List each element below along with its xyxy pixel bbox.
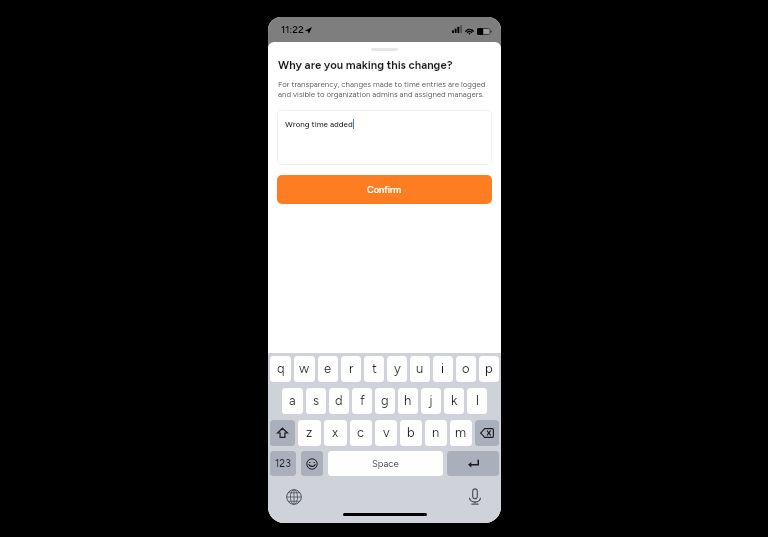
button[interactable]: u [410, 356, 430, 382]
staticText: k [451, 393, 458, 409]
staticText: w [299, 361, 310, 377]
staticText: c [357, 425, 365, 441]
button[interactable]: o [456, 356, 476, 382]
staticText: o [462, 361, 470, 377]
button[interactable]: r [341, 356, 361, 382]
button[interactable]: y [387, 356, 407, 382]
button[interactable]: j [421, 388, 441, 414]
staticText: m [455, 425, 467, 441]
button[interactable]: Enter [447, 451, 499, 476]
button[interactable]: 123 [270, 451, 296, 476]
staticText: t [372, 361, 377, 377]
staticText: r [349, 361, 354, 377]
staticText: Why are you making this change? [278, 58, 453, 72]
staticText: h [404, 393, 412, 409]
staticText: x [332, 425, 339, 441]
button[interactable]: h [398, 388, 418, 414]
button[interactable]: g [375, 388, 395, 414]
button[interactable]: Space [328, 451, 443, 476]
button[interactable]: t [364, 356, 384, 382]
staticText: i [441, 361, 445, 377]
staticText: g [381, 393, 389, 409]
staticText: v [383, 425, 390, 441]
button[interactable]: Wrong time added [277, 110, 492, 165]
button[interactable]: m [450, 420, 472, 446]
staticText: f [360, 393, 365, 409]
button[interactable]: z [298, 420, 321, 446]
button[interactable]: e [318, 356, 338, 382]
button[interactable]: c [350, 420, 372, 446]
staticText: q [277, 361, 285, 377]
staticText: y [394, 361, 401, 377]
staticText: d [335, 393, 343, 409]
button[interactable]: s [306, 388, 326, 414]
staticText: u [416, 361, 424, 377]
button[interactable]: w [294, 356, 315, 382]
staticText: j [429, 393, 433, 409]
button[interactable]: Shift [270, 420, 295, 446]
staticText: s [313, 393, 320, 409]
button[interactable]: Emoji [301, 451, 323, 476]
button[interactable]: a [282, 388, 303, 414]
staticText: n [432, 425, 440, 441]
button[interactable]: v [375, 420, 397, 446]
button[interactable]: q [270, 356, 291, 382]
staticText: p [485, 361, 493, 377]
staticText: l [476, 393, 479, 409]
button[interactable]: Voice input [468, 488, 482, 505]
button[interactable]: p [479, 356, 499, 382]
staticText: b [407, 425, 415, 441]
staticText: z [306, 425, 313, 441]
button[interactable]: k [444, 388, 464, 414]
staticText: Wrong time added [285, 119, 353, 129]
staticText: For transparency, changes made to time e… [278, 79, 493, 99]
staticText: 123 [275, 457, 292, 470]
button[interactable]: Backspace [475, 420, 499, 446]
staticText: Space [372, 458, 399, 469]
button[interactable]: f [352, 388, 372, 414]
staticText: Confirm [367, 184, 402, 195]
button[interactable]: b [400, 420, 422, 446]
button[interactable]: n [425, 420, 447, 446]
button[interactable]: Change keyboard language [285, 488, 302, 505]
button[interactable]: i [433, 356, 453, 382]
staticText: e [324, 361, 332, 377]
staticText: a [289, 393, 296, 409]
button[interactable]: l [467, 388, 487, 414]
button[interactable]: x [324, 420, 347, 446]
button[interactable]: Confirm [277, 175, 492, 204]
button[interactable]: d [329, 388, 349, 414]
staticText: 11:22 [281, 23, 304, 35]
